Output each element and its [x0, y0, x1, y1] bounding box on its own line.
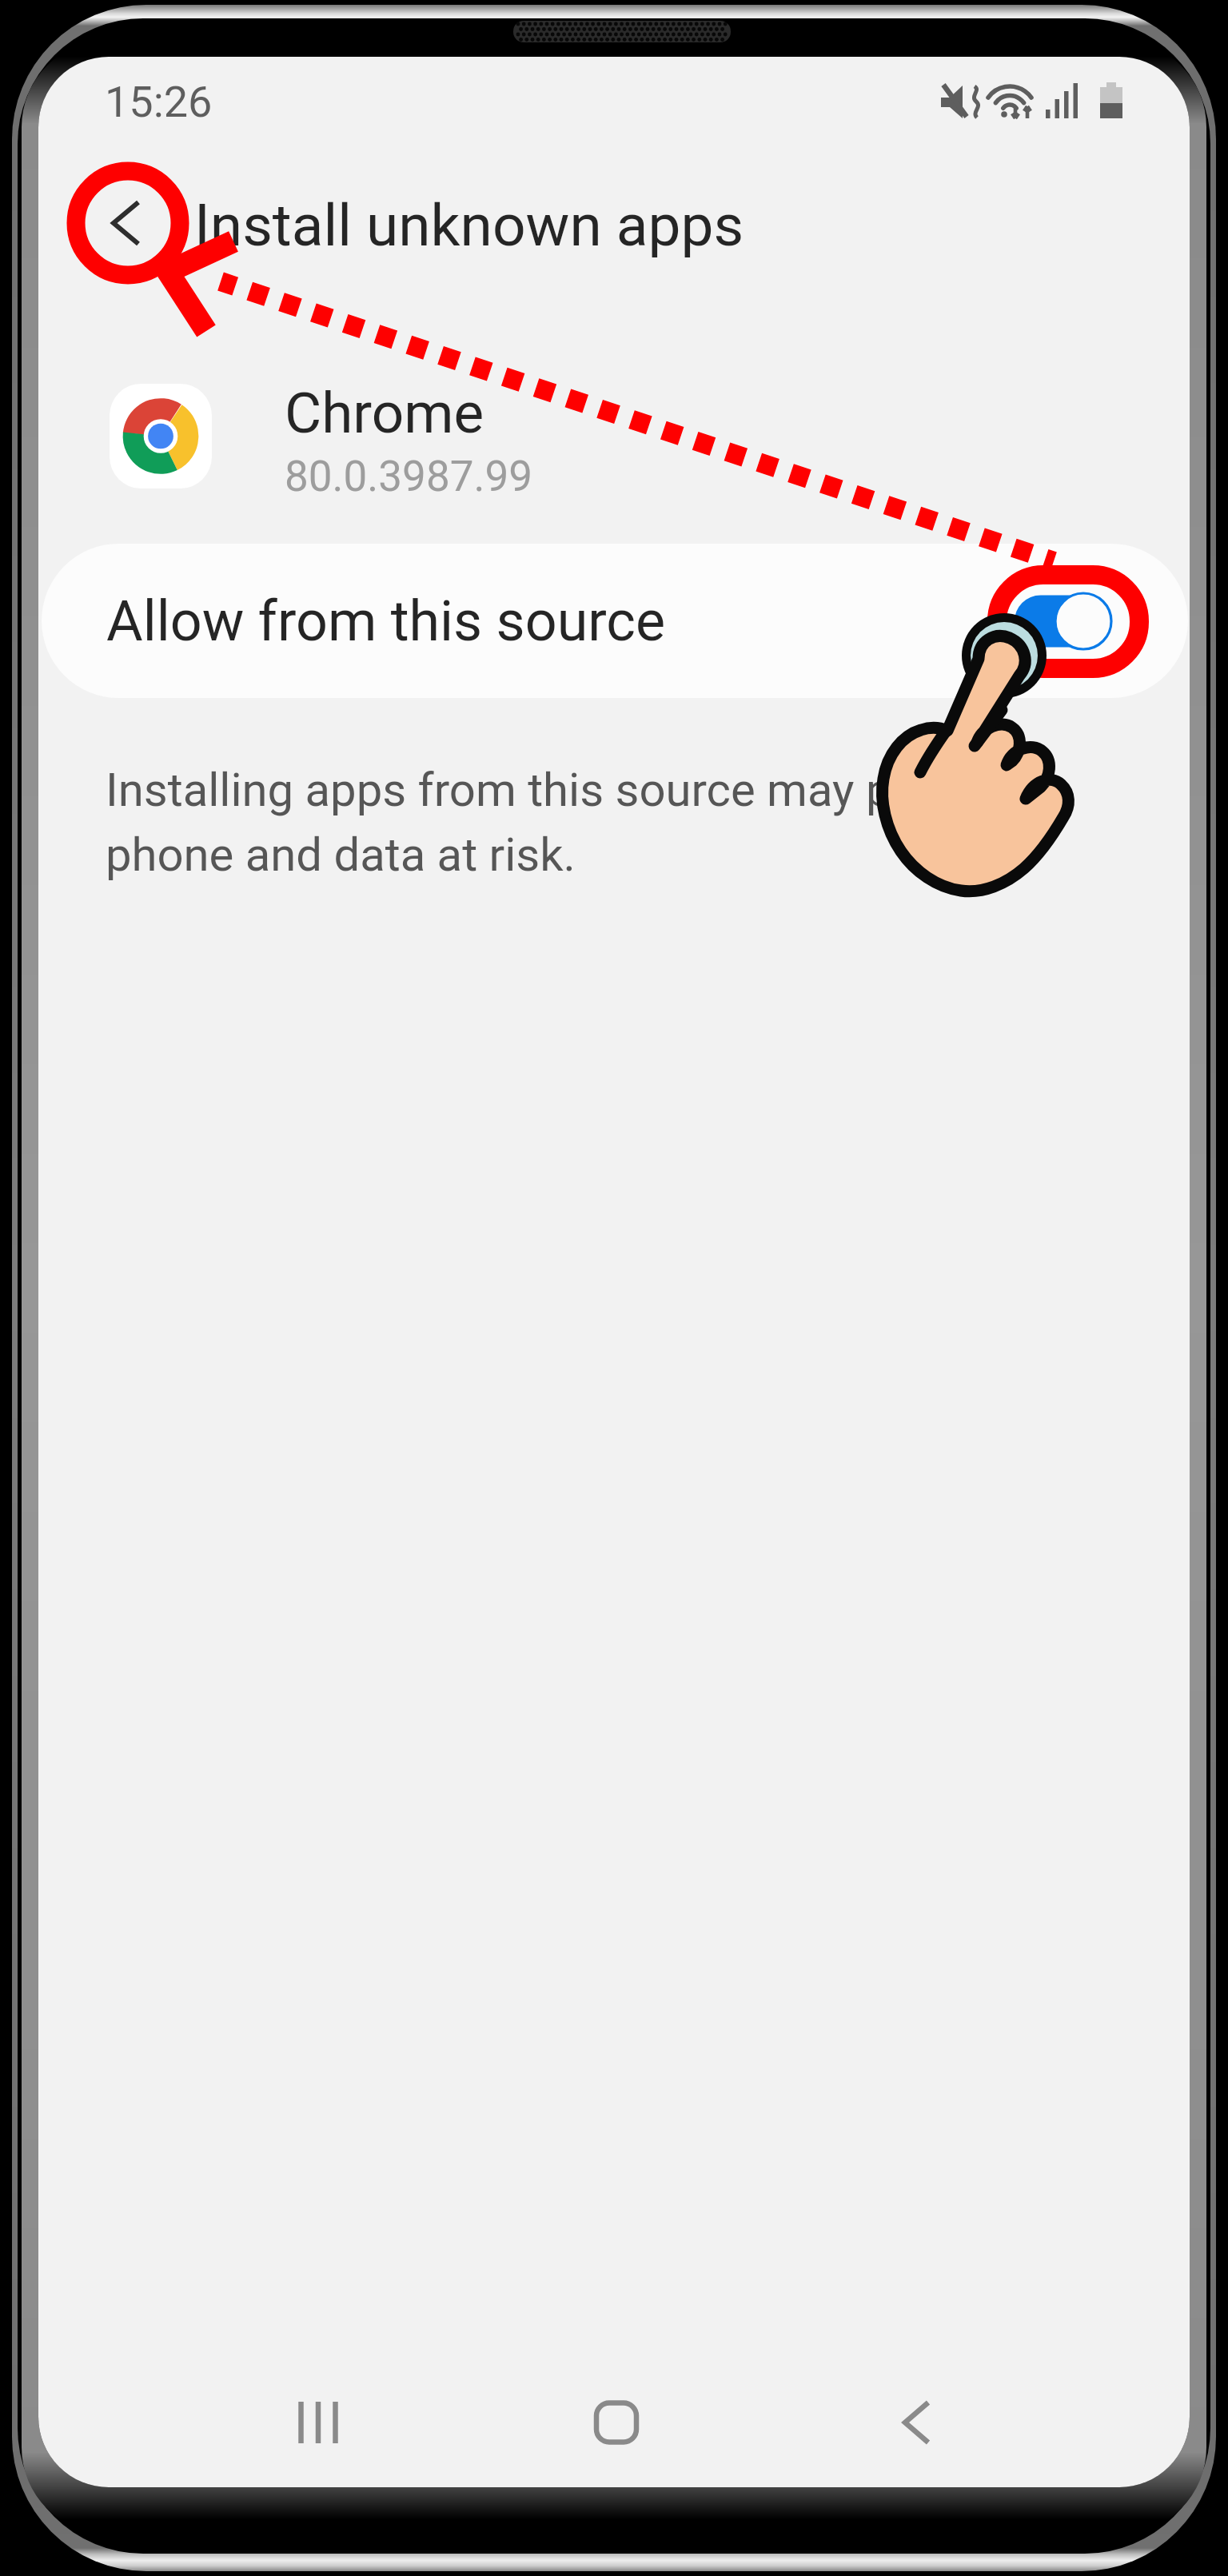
staticText: Chrome	[285, 380, 484, 446]
button[interactable]: Recent apps	[169, 2375, 467, 2470]
staticText: Installing apps from this source may put…	[106, 763, 1089, 882]
button[interactable]: Home	[467, 2375, 765, 2470]
button[interactable]: Back	[765, 2375, 1063, 2470]
staticText: Install unknown apps	[194, 191, 744, 260]
button[interactable]: Allow from this source	[42, 544, 1188, 698]
button[interactable]: Navigate up	[64, 167, 187, 282]
staticText: 80.0.3987.99	[285, 452, 533, 501]
button[interactable]: Chrome	[38, 361, 1190, 544]
staticText: 15:26	[105, 77, 213, 127]
staticText: Allow from this source	[106, 588, 666, 654]
